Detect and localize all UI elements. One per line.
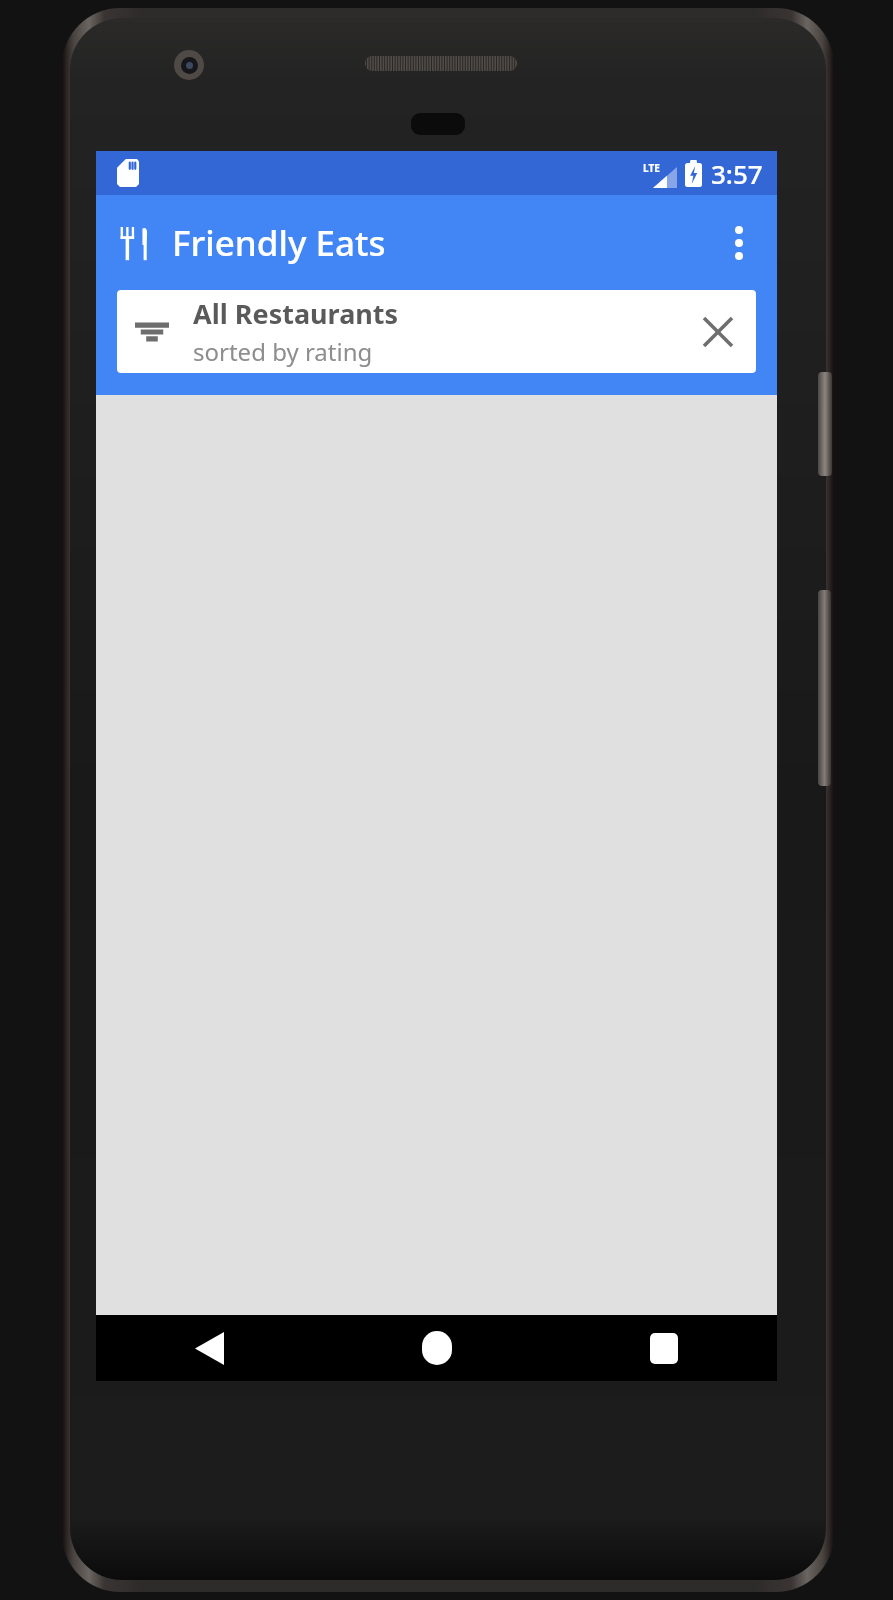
button[interactable]: Clear filters (692, 306, 744, 358)
staticText: 3:57 (711, 156, 763, 191)
button[interactable]: Recent apps (550, 1315, 777, 1381)
staticText: All Restaurants (193, 295, 399, 332)
button[interactable]: Home (323, 1315, 550, 1381)
button[interactable]: Back (96, 1315, 323, 1381)
staticText: LTE (643, 161, 660, 175)
button[interactable]: All Restaurants (117, 290, 756, 373)
staticText: sorted by rating (193, 335, 373, 368)
staticText: Friendly Eats (172, 219, 386, 267)
button[interactable]: More options (709, 213, 769, 273)
